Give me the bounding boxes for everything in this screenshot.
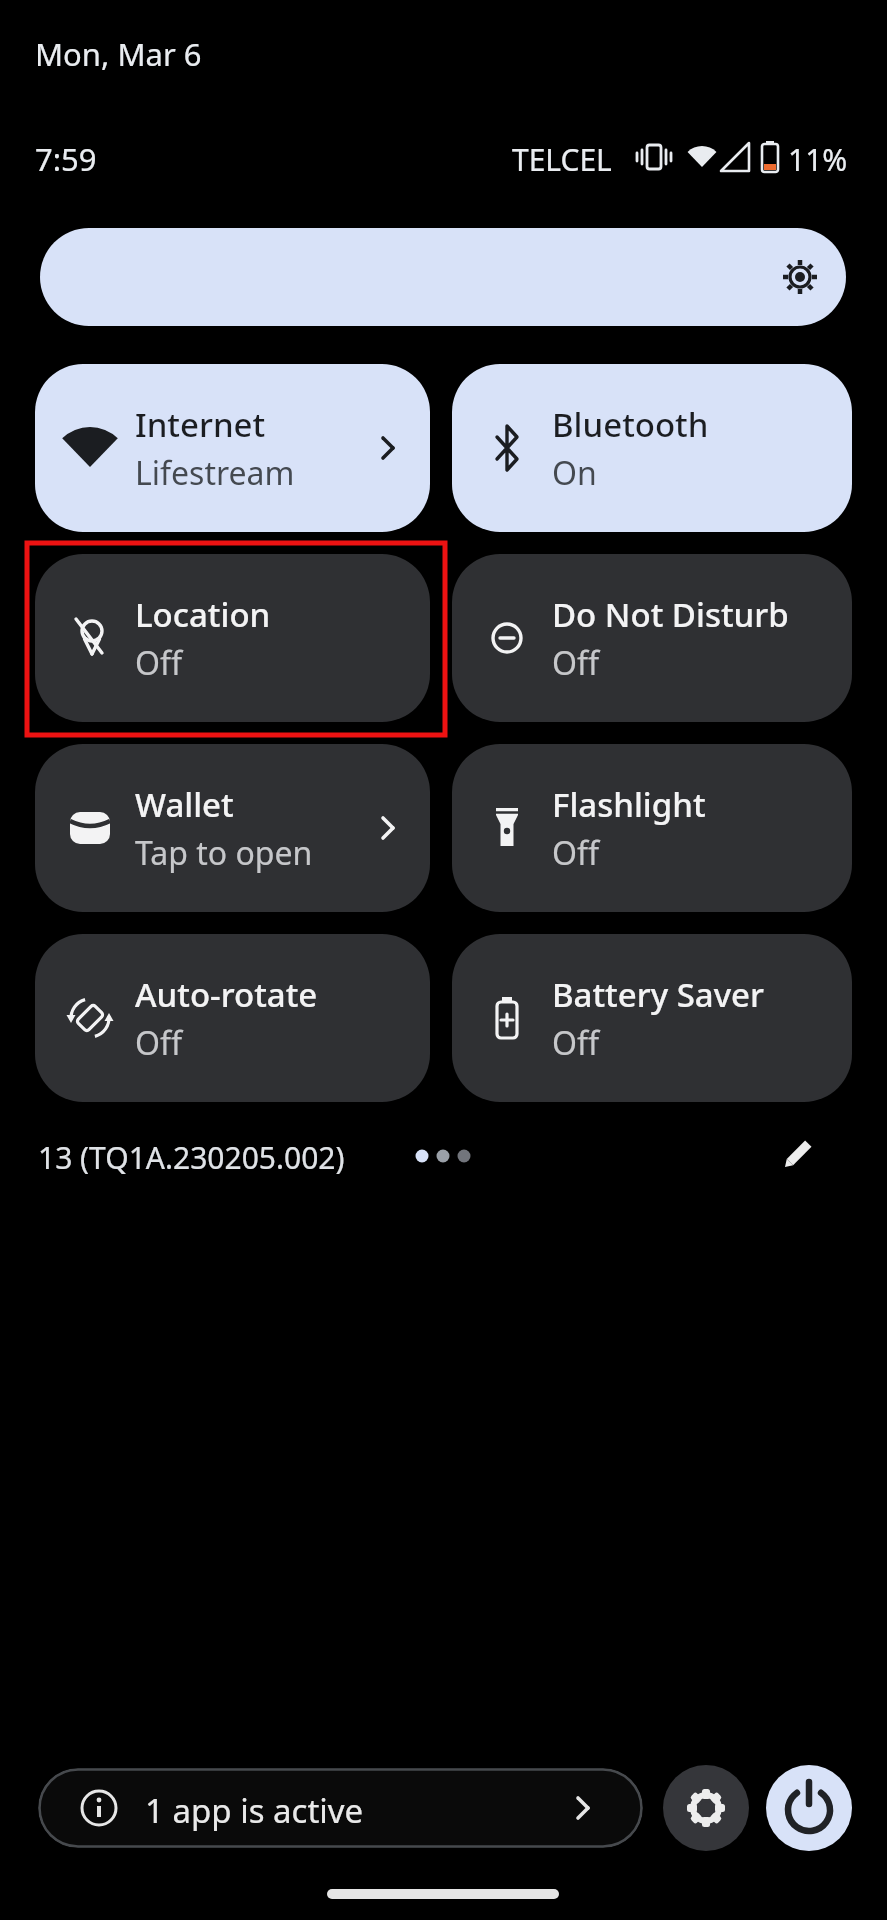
staticText: Off [135, 641, 183, 685]
button[interactable]: Auto-rotate [35, 934, 430, 1102]
staticText: Mon, Mar 6 [35, 33, 202, 75]
staticText: Off [552, 1021, 600, 1065]
staticText: Tap to open [135, 831, 313, 875]
staticText: Flashlight [552, 782, 706, 827]
staticText: 11% [788, 139, 848, 180]
staticText: Wallet [135, 782, 234, 827]
staticText: Off [135, 1021, 183, 1065]
button[interactable]: Internet [35, 364, 430, 532]
staticText: Internet [135, 402, 266, 447]
staticText: Off [552, 831, 600, 875]
button[interactable] [663, 1765, 749, 1851]
button[interactable]: Bluetooth [452, 364, 852, 532]
button[interactable]: 1 app is active [38, 1768, 643, 1848]
staticText: Location [135, 592, 271, 637]
staticText: On [552, 451, 597, 495]
staticText: Do Not Disturb [552, 592, 789, 637]
staticText: Auto-rotate [135, 972, 318, 1017]
button[interactable] [766, 1765, 852, 1851]
button[interactable] [40, 228, 846, 326]
staticText: 7:59 [35, 138, 97, 180]
button[interactable]: Location [35, 554, 430, 722]
staticText: 13 (TQ1A.230205.002) [38, 1137, 345, 1178]
button[interactable]: Do Not Disturb [452, 554, 852, 722]
staticText: Off [552, 641, 600, 685]
button[interactable]: Flashlight [452, 744, 852, 912]
staticText: Lifestream [135, 451, 295, 495]
button[interactable] [773, 1131, 821, 1179]
staticText: Bluetooth [552, 402, 709, 447]
staticText: Battery Saver [552, 972, 764, 1017]
staticText: 1 app is active [145, 1788, 364, 1833]
staticText: TELCEL [512, 139, 612, 180]
button[interactable]: Wallet [35, 744, 430, 912]
button[interactable]: Battery Saver [452, 934, 852, 1102]
